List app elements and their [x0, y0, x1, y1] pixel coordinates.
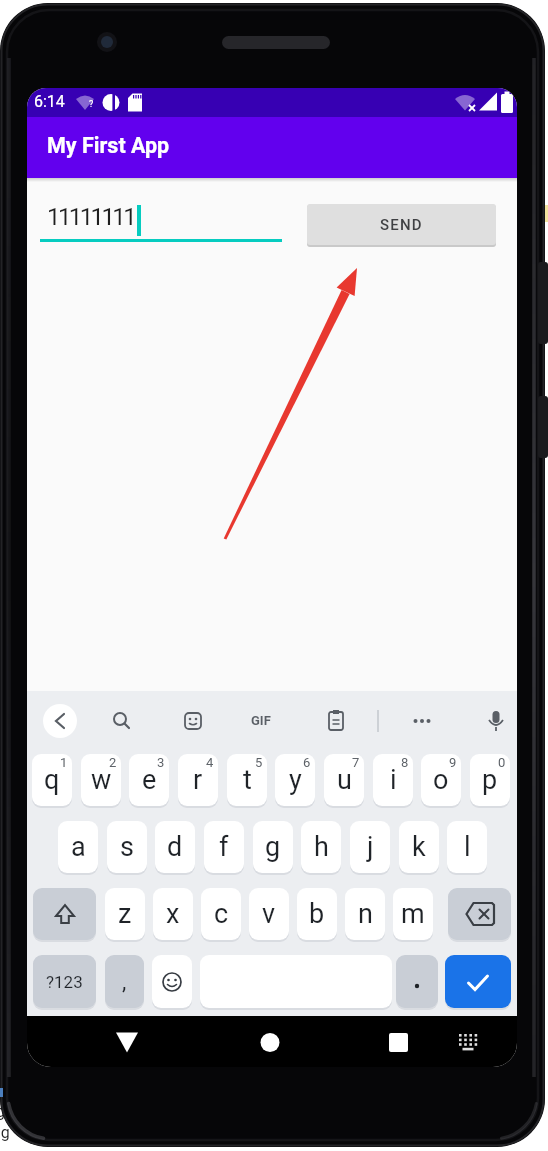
- button[interactable]: a: [58, 821, 98, 873]
- button[interactable]: q: [32, 754, 72, 806]
- button[interactable]: t: [227, 754, 267, 806]
- button[interactable]: r: [178, 754, 218, 806]
- button[interactable]: ,: [105, 955, 144, 1008]
- staticText: 6:14: [34, 92, 65, 111]
- staticText: ?: [89, 99, 94, 110]
- button[interactable]: h: [301, 821, 341, 873]
- staticText: x: [166, 898, 180, 930]
- staticText: 7: [352, 755, 360, 770]
- button[interactable]: n: [345, 888, 385, 940]
- staticText: g: [0, 1102, 5, 1121]
- staticText: My First App: [47, 133, 170, 158]
- staticText: j: [367, 831, 374, 863]
- staticText: y: [289, 764, 302, 796]
- button[interactable]: j: [350, 821, 390, 873]
- staticText: 5: [255, 755, 263, 770]
- button[interactable]: [105, 1022, 149, 1064]
- button[interactable]: d: [155, 821, 195, 873]
- staticText: w: [91, 764, 112, 796]
- staticText: v: [262, 898, 276, 930]
- button[interactable]: k: [399, 821, 439, 873]
- button[interactable]: y: [275, 754, 315, 806]
- staticText: s: [120, 831, 134, 863]
- staticText: l: [464, 831, 471, 863]
- staticText: f: [219, 831, 229, 863]
- staticText: 1: [60, 755, 68, 770]
- button[interactable]: [43, 704, 77, 738]
- staticText: h: [314, 831, 329, 863]
- button[interactable]: g: [253, 821, 293, 873]
- staticText: 4: [206, 755, 214, 770]
- staticText: GIF: [251, 713, 271, 728]
- staticText: 8: [401, 755, 409, 770]
- staticText: ug: [0, 1123, 10, 1142]
- staticText: c: [214, 898, 229, 930]
- staticText: q: [44, 764, 60, 796]
- staticText: 6: [303, 755, 311, 770]
- button[interactable]: ?123: [33, 955, 96, 1008]
- button[interactable]: [33, 888, 96, 940]
- staticText: d: [167, 831, 183, 863]
- staticText: 3: [157, 755, 165, 770]
- button[interactable]: [377, 1022, 421, 1064]
- staticText: z: [118, 898, 132, 930]
- staticText: i: [390, 764, 397, 796]
- button[interactable]: p: [470, 754, 510, 806]
- button[interactable]: f: [204, 821, 244, 873]
- button[interactable]: [396, 955, 438, 1008]
- staticText: 2: [109, 755, 117, 770]
- button[interactable]: [445, 955, 511, 1008]
- button[interactable]: c: [201, 888, 241, 940]
- button[interactable]: x: [153, 888, 193, 940]
- button[interactable]: i: [373, 754, 413, 806]
- button[interactable]: [152, 955, 192, 1008]
- staticText: SEND: [380, 216, 423, 234]
- button[interactable]: s: [107, 821, 147, 873]
- button[interactable]: [248, 1022, 292, 1064]
- button[interactable]: [448, 888, 511, 940]
- staticText: ?123: [46, 972, 83, 992]
- staticText: e: [142, 764, 157, 796]
- staticText: n: [358, 898, 373, 930]
- staticText: u: [337, 764, 352, 796]
- staticText: b: [309, 898, 325, 930]
- staticText: t: [243, 764, 252, 796]
- button[interactable]: e: [129, 754, 169, 806]
- staticText: 0: [498, 755, 506, 770]
- button[interactable]: u: [324, 754, 364, 806]
- staticText: m: [401, 898, 425, 930]
- staticText: a: [71, 831, 86, 863]
- button[interactable]: v: [249, 888, 289, 940]
- button[interactable]: z: [105, 888, 145, 940]
- button[interactable]: w: [81, 754, 121, 806]
- button[interactable]: m: [393, 888, 433, 940]
- button[interactable]: l: [447, 821, 487, 873]
- button[interactable]: o: [421, 754, 461, 806]
- staticText: r: [193, 764, 203, 796]
- staticText: k: [412, 831, 426, 863]
- staticText: o: [433, 764, 449, 796]
- staticText: 9: [449, 755, 457, 770]
- staticText: 11111111: [47, 203, 135, 231]
- staticText: p: [482, 764, 498, 796]
- staticText: ,: [122, 969, 127, 995]
- button[interactable]: SEND: [307, 204, 496, 245]
- staticText: g: [265, 831, 281, 863]
- button[interactable]: b: [297, 888, 337, 940]
